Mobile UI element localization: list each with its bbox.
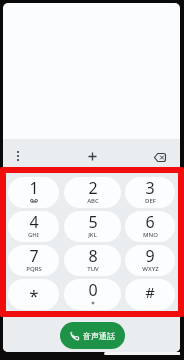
- button[interactable]: [147, 145, 172, 169]
- staticText: 8: [88, 245, 98, 267]
- button[interactable]: [6, 144, 30, 168]
- button[interactable]: *: [8, 279, 59, 310]
- button[interactable]: 3: [125, 177, 175, 208]
- button[interactable]: 9: [125, 245, 175, 276]
- button[interactable]: 2: [64, 177, 121, 208]
- button[interactable]: [80, 144, 104, 168]
- staticText: MNO: [143, 231, 158, 239]
- staticText: #: [145, 282, 155, 302]
- staticText: ABC: [87, 197, 99, 205]
- staticText: 1: [29, 177, 39, 199]
- staticText: DEF: [145, 197, 156, 205]
- button[interactable]: #: [125, 279, 175, 310]
- staticText: 0: [88, 279, 98, 301]
- staticText: 6: [145, 211, 155, 233]
- button[interactable]: 5: [64, 211, 121, 242]
- staticText: PQRS: [26, 265, 42, 273]
- staticText: TUV: [87, 265, 99, 273]
- button[interactable]: 8: [64, 245, 121, 276]
- button[interactable]: 7: [8, 245, 59, 276]
- button[interactable]: 6: [125, 211, 175, 242]
- staticText: 3: [145, 177, 155, 199]
- button[interactable]: 0: [64, 279, 121, 310]
- staticText: GHI: [28, 231, 39, 239]
- button[interactable]: 音声通話: [60, 322, 125, 349]
- staticText: JKL: [88, 231, 97, 239]
- staticText: 音声通話: [83, 331, 115, 341]
- button[interactable]: 1: [8, 177, 59, 208]
- staticText: 4: [29, 211, 39, 233]
- staticText: 7: [29, 245, 39, 267]
- button[interactable]: 4: [8, 211, 59, 242]
- staticText: 5: [88, 211, 98, 233]
- staticText: 9: [145, 245, 155, 267]
- staticText: WXYZ: [142, 265, 159, 273]
- staticText: *: [29, 284, 39, 307]
- staticText: 2: [88, 177, 98, 199]
